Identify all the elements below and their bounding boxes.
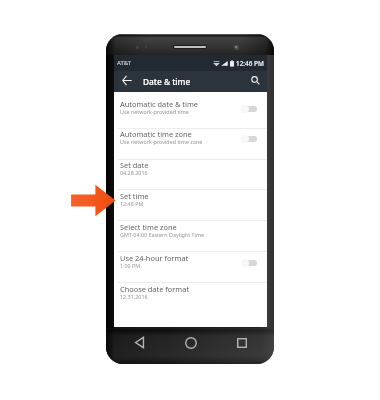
staticText: Date & time xyxy=(143,76,191,87)
button[interactable]: Automatic time zone xyxy=(241,134,257,144)
staticText: 1:00 PM xyxy=(120,262,141,269)
staticText: Automatic date & time xyxy=(120,99,198,109)
staticText: 12:46 PM xyxy=(236,59,264,68)
staticText: Select time zone xyxy=(120,222,177,232)
staticText: Use 24-hour format xyxy=(120,253,189,263)
button[interactable]: Set date xyxy=(114,156,267,187)
button[interactable]: Home xyxy=(165,328,216,357)
button[interactable]: Use 24-hour format xyxy=(114,249,267,280)
staticText: Set time xyxy=(120,191,149,201)
button[interactable]: Automatic time zone xyxy=(114,125,267,156)
button[interactable]: Select time zone xyxy=(114,218,267,249)
button[interactable]: Use 24-hour format xyxy=(241,258,257,268)
staticText: Set date xyxy=(120,160,149,170)
button[interactable]: Recent apps xyxy=(216,328,267,357)
staticText: 12.31.2016 xyxy=(120,293,148,300)
staticText: Use network-provided time xyxy=(120,108,189,115)
staticText: Automatic time zone xyxy=(120,129,192,139)
button[interactable]: Navigate up xyxy=(119,73,134,88)
button[interactable]: Choose date format xyxy=(114,280,267,311)
staticText: Choose date format xyxy=(120,284,190,294)
staticText: 04.28.2016 xyxy=(120,169,148,176)
staticText: GMT-04:00 Eastern Daylight Time xyxy=(120,231,205,238)
button[interactable]: Search xyxy=(248,73,263,88)
staticText: 12:46 PM xyxy=(120,200,144,207)
button[interactable]: Automatic date & time xyxy=(114,95,267,126)
button[interactable]: Automatic date & time xyxy=(241,104,257,114)
button[interactable]: Back xyxy=(114,328,165,357)
button[interactable]: Set time xyxy=(114,187,267,218)
staticText: Use network-provided time zone xyxy=(120,138,203,145)
staticText: AT&T xyxy=(117,59,131,67)
